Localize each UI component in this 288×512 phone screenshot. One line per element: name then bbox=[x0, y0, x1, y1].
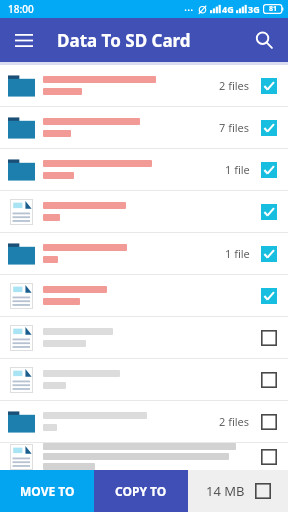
button[interactable]: 7 files bbox=[0, 107, 288, 149]
button[interactable]: 1 file bbox=[0, 233, 288, 275]
staticText: 1 file bbox=[225, 162, 250, 177]
button[interactable]: 1 file bbox=[0, 149, 288, 191]
button[interactable]: Select item bbox=[254, 407, 284, 437]
button[interactable]: Select item bbox=[254, 443, 284, 470]
staticText: COPY TO bbox=[115, 483, 167, 499]
button[interactable]: 2 files bbox=[0, 401, 288, 443]
staticText: 1 file bbox=[225, 246, 250, 261]
button[interactable]: Select item bbox=[0, 317, 288, 359]
staticText: 3G bbox=[248, 3, 260, 15]
button[interactable]: 2 files bbox=[0, 65, 288, 107]
button[interactable]: Deselect item bbox=[254, 71, 284, 101]
button[interactable]: Select item bbox=[0, 359, 288, 401]
button[interactable]: COPY TO bbox=[94, 470, 188, 512]
staticText: 18:00 bbox=[8, 2, 34, 16]
button[interactable]: 14 MB bbox=[188, 470, 288, 512]
staticText: 81 bbox=[269, 4, 278, 14]
button[interactable]: Deselect item bbox=[254, 155, 284, 185]
staticText: 4G bbox=[222, 3, 234, 15]
button[interactable]: Deselect item bbox=[254, 197, 284, 227]
staticText: 2 files bbox=[219, 78, 250, 93]
button[interactable]: Deselect item bbox=[254, 113, 284, 143]
button[interactable]: Search bbox=[245, 21, 283, 59]
button[interactable]: Open navigation menu bbox=[5, 21, 43, 59]
button[interactable]: Select item bbox=[0, 443, 288, 470]
button[interactable]: Deselect item bbox=[254, 281, 284, 311]
staticText: MOVE TO bbox=[20, 483, 75, 499]
button[interactable]: Select item bbox=[254, 323, 284, 353]
staticText: Data To SD Card bbox=[57, 29, 191, 52]
button[interactable]: Deselect item bbox=[0, 275, 288, 317]
button[interactable]: Select item bbox=[254, 365, 284, 395]
button[interactable]: Deselect item bbox=[254, 239, 284, 269]
button[interactable]: Deselect item bbox=[0, 191, 288, 233]
button[interactable]: MOVE TO bbox=[0, 470, 94, 512]
staticText: 7 files bbox=[219, 120, 250, 135]
staticText: 2 files bbox=[219, 414, 250, 429]
staticText: 14 MB bbox=[206, 482, 245, 500]
